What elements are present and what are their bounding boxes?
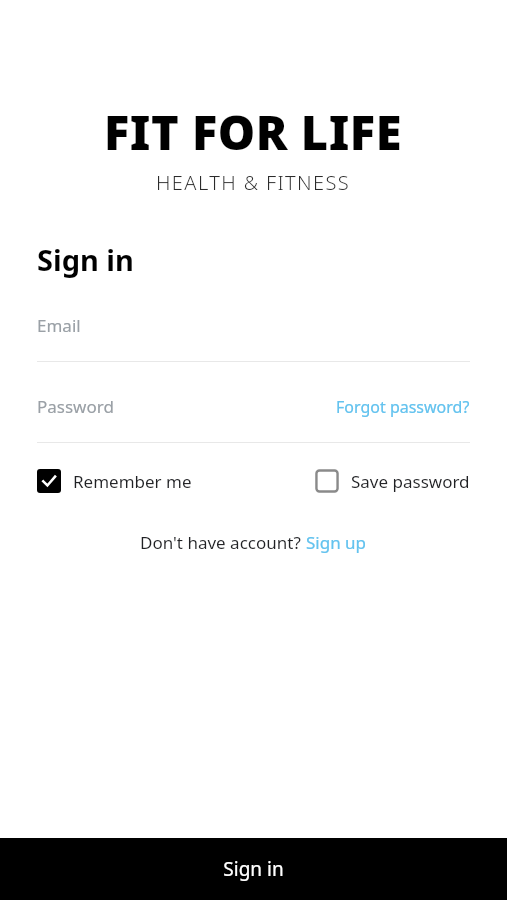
staticText: Sign up [306,531,367,554]
staticText: Save password [351,470,470,493]
staticText: FIT FOR LIFE [104,100,403,164]
staticText: Sign in [223,856,284,882]
button[interactable]: Forgot password? [336,396,470,418]
button[interactable]: Save password unchecked [315,469,470,493]
button[interactable]: Password [37,395,114,418]
button[interactable]: Sign up [306,531,367,554]
staticText: Forgot password? [336,396,470,418]
staticText: HEALTH & FITNESS [156,169,351,196]
other: Remember me checked [37,469,61,493]
staticText: Remember me [73,470,192,493]
button[interactable]: Email [37,314,470,362]
staticText: Email [37,314,81,337]
staticText: Sign in [37,240,134,279]
staticText: Don't have account? [140,531,306,554]
other: Save password unchecked [315,469,339,493]
button[interactable]: Remember me checked [37,469,192,493]
button[interactable]: Sign in [0,838,507,900]
